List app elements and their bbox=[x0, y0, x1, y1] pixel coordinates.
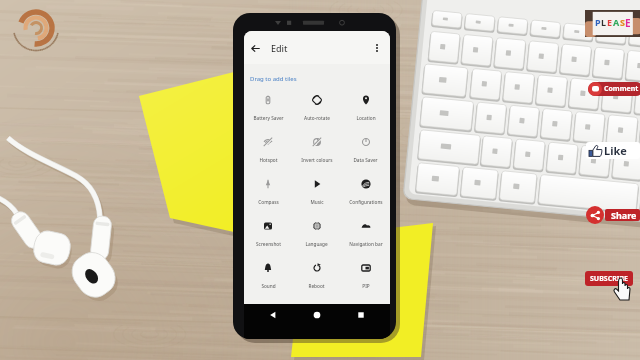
staticText: Configurations bbox=[349, 199, 383, 205]
button[interactable]: Location bbox=[341, 88, 390, 130]
button[interactable]: Home bbox=[302, 304, 332, 326]
button[interactable]: Hotspot bbox=[244, 130, 292, 172]
staticText: SUBSCRIBE bbox=[590, 274, 629, 284]
staticText: Share bbox=[611, 209, 637, 221]
staticText: Compass bbox=[258, 199, 279, 205]
staticText: E bbox=[607, 16, 613, 28]
staticText: Edit bbox=[271, 42, 288, 54]
button[interactable]: Share bbox=[586, 206, 640, 224]
button[interactable]: Back bbox=[244, 37, 266, 59]
button[interactable]: Reboot bbox=[292, 256, 341, 298]
button[interactable]: Invert colours bbox=[292, 130, 341, 172]
button[interactable]: PIP bbox=[341, 256, 390, 298]
button[interactable]: More options bbox=[366, 37, 388, 59]
staticText: Navigation bar bbox=[349, 241, 383, 247]
staticText: Comment bbox=[604, 84, 639, 94]
button[interactable]: Navigation bar bbox=[341, 214, 390, 256]
button[interactable]: Back bbox=[258, 304, 288, 326]
staticText: S bbox=[620, 16, 625, 28]
staticText: Language bbox=[305, 241, 328, 247]
staticText: E bbox=[625, 16, 631, 30]
staticText: Like bbox=[604, 143, 627, 158]
button[interactable]: Comment bbox=[588, 82, 640, 96]
button[interactable]: Screenshot bbox=[244, 214, 292, 256]
button[interactable]: Music bbox=[292, 172, 341, 214]
button[interactable]: Like bbox=[589, 142, 638, 159]
staticText: Drag to add tiles bbox=[250, 75, 297, 83]
staticText: Reboot bbox=[308, 283, 325, 289]
button[interactable]: Compass bbox=[244, 172, 292, 214]
staticText: P bbox=[595, 16, 601, 28]
staticText: Invert colours bbox=[301, 157, 333, 163]
button[interactable]: Recents bbox=[346, 304, 376, 326]
button[interactable]: Data Saver bbox=[341, 130, 390, 172]
staticText: Sound bbox=[261, 283, 276, 289]
button[interactable]: SUBSCRIBE bbox=[585, 271, 633, 286]
button[interactable]: Auto-rotate bbox=[292, 88, 341, 130]
button[interactable]: Language bbox=[292, 214, 341, 256]
button[interactable]: Battery Saver bbox=[244, 88, 292, 130]
staticText: Location bbox=[356, 115, 376, 121]
staticText: Screenshot bbox=[256, 241, 281, 247]
button[interactable]: Sound bbox=[244, 256, 292, 298]
staticText: A bbox=[613, 16, 620, 28]
staticText: L bbox=[601, 16, 607, 28]
staticText: Auto-rotate bbox=[304, 115, 330, 121]
staticText: Battery Saver bbox=[253, 115, 284, 121]
button[interactable]: Configurations bbox=[341, 172, 390, 214]
staticText: Hotspot bbox=[259, 157, 278, 163]
staticText: PIP bbox=[362, 283, 370, 289]
staticText: Data Saver bbox=[353, 157, 378, 163]
staticText: Music bbox=[310, 199, 324, 205]
